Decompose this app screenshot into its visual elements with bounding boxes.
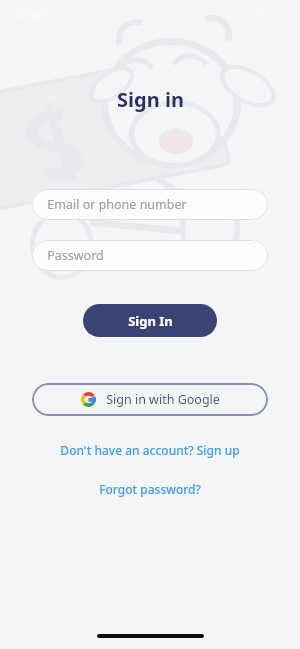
staticText: Forgot password? bbox=[99, 481, 201, 497]
button[interactable]: Sign In bbox=[83, 304, 217, 337]
staticText: Don't have an account? Sign up bbox=[60, 442, 240, 458]
button[interactable]: Forgot password? bbox=[91, 478, 209, 500]
button[interactable]: Password bbox=[32, 240, 268, 271]
staticText: Password bbox=[47, 247, 104, 264]
staticText: Sign in with Google bbox=[106, 391, 220, 408]
staticText: Sign In bbox=[128, 312, 173, 330]
button[interactable]: Sign in with Google bbox=[32, 383, 268, 416]
staticText: Email or phone number bbox=[47, 196, 187, 213]
button[interactable]: Don't have an account? Sign up bbox=[52, 439, 248, 461]
staticText: Sign in bbox=[117, 86, 184, 113]
button[interactable]: Email or phone number bbox=[32, 189, 268, 220]
